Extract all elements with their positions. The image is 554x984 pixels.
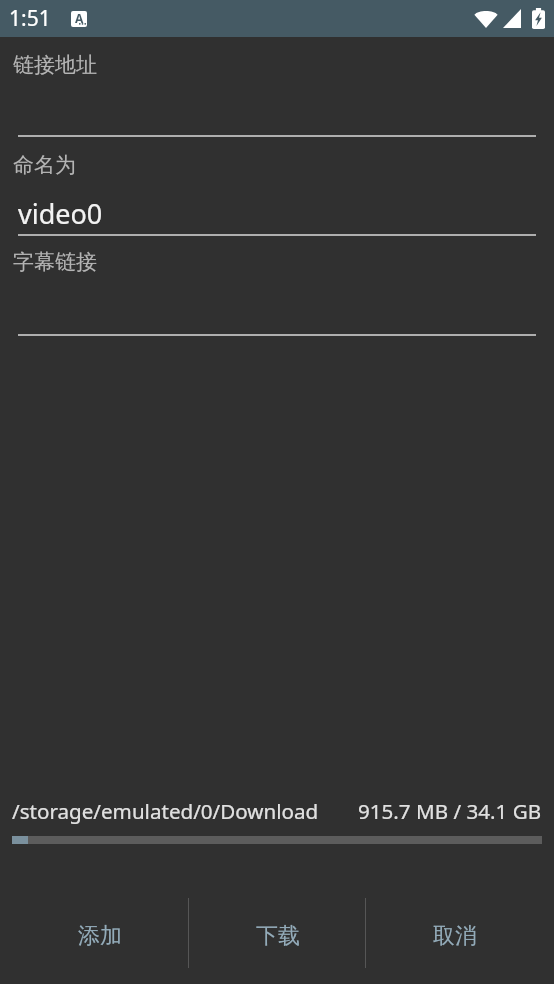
button[interactable]: 命名为 — [0, 140, 554, 236]
button[interactable]: 添加 — [11, 885, 189, 981]
staticText: 字幕链接 — [13, 249, 97, 275]
button[interactable]: 字幕链接 — [0, 237, 554, 336]
button[interactable]: 下载 — [189, 885, 366, 981]
button[interactable]: /storage/emulated/0/Download — [0, 793, 554, 829]
staticText: A — [75, 11, 84, 26]
staticText: 下载 — [256, 922, 300, 950]
staticText: /storage/emulated/0/Download — [12, 797, 319, 825]
button[interactable]: 取消 — [366, 885, 543, 981]
staticText: 命名为 — [13, 152, 76, 178]
other: Mobile signal — [503, 9, 521, 28]
other: Battery charging — [532, 8, 545, 29]
other: Wi-Fi — [474, 9, 498, 28]
staticText: 915.7 MB / 34.1 GB — [358, 797, 542, 825]
staticText: 取消 — [433, 922, 477, 950]
other: Input method — [71, 11, 87, 27]
staticText: 链接地址 — [13, 52, 97, 78]
staticText: 添加 — [78, 922, 122, 950]
staticText: 1:51 — [9, 4, 51, 33]
staticText: video0 — [18, 195, 103, 232]
button[interactable]: 链接地址 — [0, 40, 554, 137]
